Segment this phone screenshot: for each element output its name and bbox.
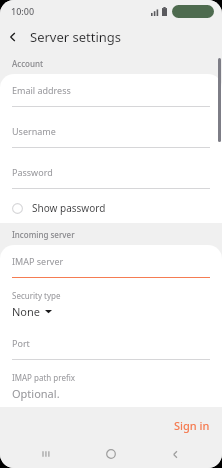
staticText: IMAP server	[12, 255, 64, 267]
button[interactable]: Show password	[0, 193, 222, 223]
staticText: Optional.	[12, 386, 60, 401]
button[interactable]: Email address	[0, 74, 222, 115]
button[interactable]: Sign in	[162, 413, 222, 438]
button[interactable]: Back	[0, 24, 26, 50]
button[interactable]: IMAP path prefix	[0, 368, 222, 407]
staticText: Show password	[32, 201, 106, 215]
staticText: Password	[12, 166, 53, 178]
staticText: Sign in	[174, 418, 210, 433]
staticText: Username	[12, 125, 56, 137]
staticText: Server settings	[30, 28, 122, 46]
button[interactable]: Back	[158, 440, 192, 468]
button[interactable]: Password	[0, 156, 222, 193]
button[interactable]: Port	[0, 327, 222, 368]
button[interactable]: Home	[94, 440, 128, 468]
button[interactable]: IMAP server	[0, 245, 222, 286]
staticText: Security type	[12, 290, 61, 301]
staticText: IMAP path prefix	[12, 372, 75, 383]
staticText: Port	[12, 337, 30, 349]
staticText: None	[12, 304, 41, 319]
staticText: Email address	[12, 84, 71, 96]
staticText: 10:00	[11, 5, 35, 17]
button[interactable]: Security type	[0, 286, 222, 327]
button[interactable]: Username	[0, 115, 222, 156]
staticText: Account	[12, 58, 44, 69]
button[interactable]: Recents	[30, 440, 64, 468]
staticText: Incoming server	[12, 229, 75, 240]
